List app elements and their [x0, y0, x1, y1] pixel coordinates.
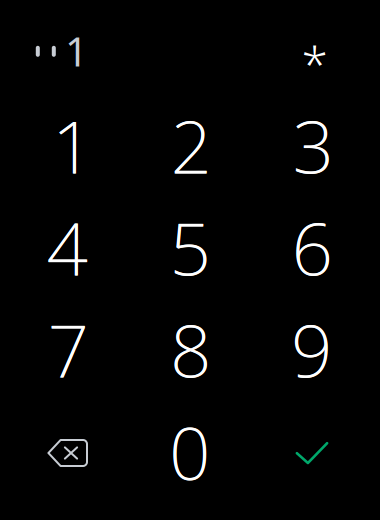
button[interactable]: 3	[250, 94, 372, 196]
staticText: 7	[47, 302, 88, 397]
staticText: 6	[292, 200, 333, 295]
staticText: 2	[170, 98, 211, 193]
staticText: 2	[171, 98, 212, 193]
staticText: 6	[291, 200, 332, 295]
staticText: 3	[293, 98, 334, 193]
button[interactable]: 2	[128, 94, 250, 196]
staticText: 5	[169, 200, 210, 295]
staticText: 0	[169, 404, 210, 500]
button[interactable]: 6	[250, 196, 372, 298]
staticText: 4	[47, 200, 88, 295]
staticText: 7	[48, 302, 89, 397]
staticText: 1	[52, 98, 93, 193]
staticText: 8	[170, 302, 211, 397]
button[interactable]: 0	[128, 401, 250, 503]
button[interactable]: 4	[6, 196, 128, 298]
staticText: *	[301, 31, 327, 95]
staticText: 9	[291, 302, 332, 397]
button[interactable]: 5	[128, 196, 250, 298]
staticText: 9	[291, 302, 332, 397]
staticText: 4	[46, 200, 87, 295]
button[interactable]: 7	[6, 298, 128, 400]
button[interactable]: Asterisk	[286, 35, 342, 91]
button[interactable]: 8	[128, 298, 250, 400]
button[interactable]: 1	[6, 94, 128, 196]
staticText: 5	[170, 200, 211, 295]
staticText: 0	[169, 404, 210, 500]
staticText: 1	[52, 98, 93, 193]
button[interactable]: Delete	[6, 401, 128, 503]
staticText: 1	[65, 24, 88, 77]
button[interactable]: Confirm	[250, 401, 372, 503]
staticText: 3	[292, 98, 333, 193]
button[interactable]: 9	[250, 298, 372, 400]
staticText: 8	[170, 302, 211, 397]
